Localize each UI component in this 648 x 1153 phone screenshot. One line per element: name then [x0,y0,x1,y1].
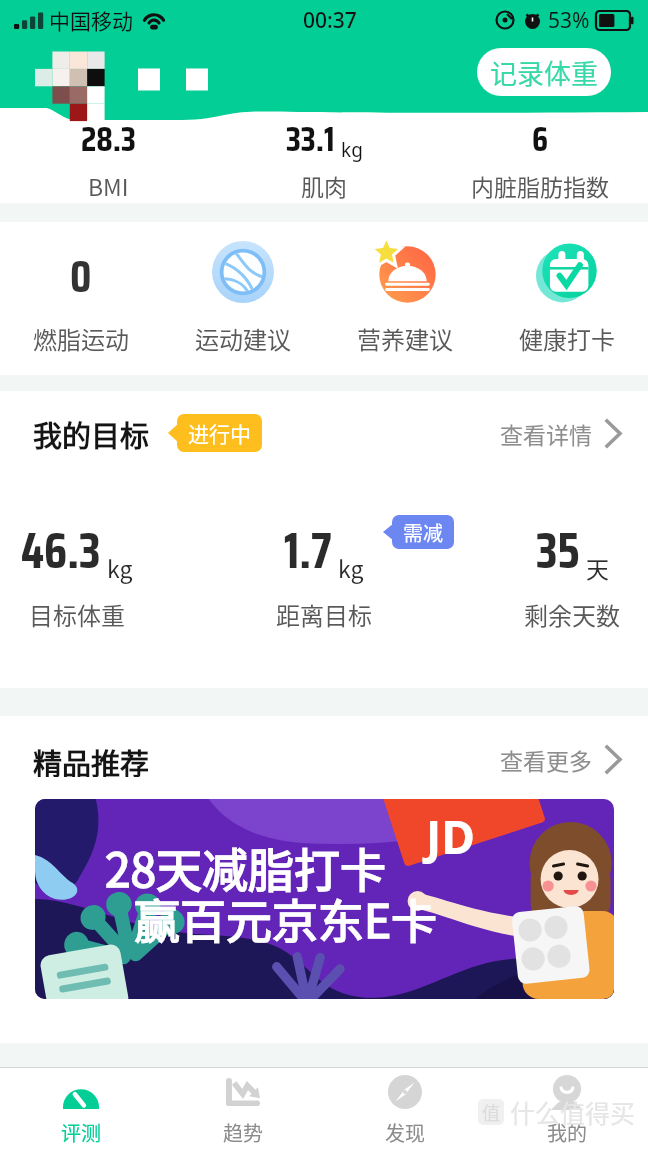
staticText: 运动建议 [195,321,291,356]
staticText: 健康打卡 [519,321,615,356]
staticText: 我的 [547,1118,587,1147]
button[interactable]: Discover [324,1068,486,1153]
staticText: 我的目标 [33,413,150,453]
staticText: 1.7 [284,512,332,589]
staticText: 记录体重 [490,53,598,92]
button[interactable]: 查看更多 [500,743,622,776]
button[interactable]: Profile [486,1068,648,1153]
button[interactable]: 查看详情 [500,417,622,450]
button[interactable]: 0 [0,222,162,375]
staticText: 内脏脂肪指数 [471,169,609,202]
staticText: 值 [482,1099,500,1125]
staticText: 精品推荐 [33,741,150,777]
button[interactable]: 营养建议 [324,222,486,375]
staticText: 46.3 [21,512,101,589]
staticText: 什么值得买 [510,1094,636,1130]
staticText: 查看更多 [500,743,592,776]
staticText: 查看详情 [500,417,592,450]
staticText: 6 [532,112,549,166]
button[interactable]: 健康打卡 [486,222,648,375]
button[interactable]: 记录体重 [477,48,611,96]
button[interactable]: Assessment [0,1068,162,1153]
staticText: 需减 [403,518,443,547]
staticText: 0 [70,241,92,303]
staticText: 肌肉 [301,169,347,202]
staticText: kg [107,551,133,584]
button[interactable]: 28天减脂打卡 [35,799,614,999]
staticText: 53% [548,6,590,35]
staticText: BMI [88,169,129,202]
staticText: JD [426,805,475,868]
staticText: 剩余天数 [524,597,620,632]
staticText: 营养建议 [357,321,453,356]
button[interactable]: Trends [162,1068,324,1153]
staticText: 28.3 [81,112,136,166]
staticText: 中国移动 [49,5,133,35]
staticText: 赢百元京东E卡 [134,885,438,952]
staticText: 发现 [385,1118,425,1147]
staticText: 评测 [61,1118,101,1147]
staticText: 目标体重 [29,597,125,632]
staticText: 距离目标 [276,597,372,632]
staticText: 天 [586,551,609,584]
staticText: 进行中 [188,418,251,448]
staticText: 趋势 [223,1118,263,1147]
staticText: kg [341,137,363,163]
button[interactable]: 运动建议 [162,222,324,375]
staticText: 33.1 [286,112,335,166]
staticText: kg [338,551,364,584]
staticText: 00:37 [303,6,357,35]
staticText: 燃脂运动 [33,321,129,356]
staticText: 28天减脂打卡 [105,834,387,901]
staticText: 35 [536,512,580,589]
